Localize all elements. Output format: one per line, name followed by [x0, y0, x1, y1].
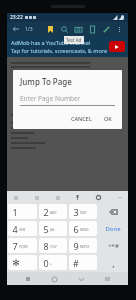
- button[interactable]: More: [115, 193, 124, 202]
- button[interactable]: OK: [101, 114, 115, 123]
- staticText: 23:22: [10, 14, 23, 21]
- staticText: 2: [43, 206, 49, 218]
- button[interactable]: Hide keyboard: [75, 273, 87, 285]
- staticText: TUV: [50, 244, 57, 249]
- button[interactable]: 9: [69, 238, 97, 253]
- button[interactable]: ✻: [8, 255, 37, 270]
- staticText: CANCEL: [71, 115, 92, 122]
- button[interactable]: Camera: [73, 24, 84, 35]
- staticText: 9: [73, 240, 79, 252]
- staticText: 4: [12, 223, 18, 235]
- staticText: Test Ad: [66, 37, 82, 43]
- button[interactable]: Done: [99, 221, 127, 236]
- button[interactable]: Bookmark: [45, 24, 56, 35]
- staticText: Tap for tutorials, screencasts, & more: [11, 47, 107, 54]
- button[interactable]: Voice input: [73, 193, 82, 202]
- staticText: PQRS: [19, 244, 28, 249]
- button[interactable]: 4: [8, 221, 37, 236]
- staticText: 7: [12, 240, 18, 252]
- button[interactable]: Switch keyboard: [101, 273, 113, 285]
- staticText: +: [50, 261, 53, 266]
- button[interactable]: Keyboard tool: [11, 193, 20, 202]
- staticText: Enter Page Number: [20, 94, 81, 103]
- button[interactable]: 5: [39, 221, 67, 236]
- staticText: DEF: [80, 210, 87, 215]
- button[interactable]: Search: [59, 24, 70, 35]
- button[interactable]: 1: [8, 204, 37, 219]
- button[interactable]: +*#: [99, 238, 127, 253]
- button[interactable]: 7: [8, 238, 37, 253]
- button[interactable]: Play video: [109, 41, 125, 52]
- button[interactable]: 8: [39, 238, 67, 253]
- button[interactable]: 6: [69, 221, 97, 236]
- button[interactable]: Keyboard tool: [53, 193, 62, 202]
- staticText: 5: [43, 223, 49, 235]
- button[interactable]: Backspace: [99, 204, 127, 219]
- button[interactable]: ,: [99, 255, 127, 270]
- staticText: Done: [105, 225, 121, 233]
- button[interactable]: More options: [115, 25, 124, 34]
- staticText: #: [73, 257, 79, 269]
- button[interactable]: Settings: [94, 193, 103, 202]
- button[interactable]: Keyboard tool: [32, 193, 41, 202]
- button[interactable]: 0: [39, 255, 67, 270]
- staticText: 8: [43, 240, 49, 252]
- button[interactable]: CANCEL: [68, 114, 95, 123]
- staticText: ✻: [12, 258, 20, 268]
- staticText: +*#: [108, 242, 119, 250]
- button[interactable]: 3: [69, 204, 97, 219]
- staticText: Jump To Page: [20, 76, 72, 87]
- staticText: MNO: [80, 227, 89, 232]
- button[interactable]: Home: [48, 273, 60, 285]
- staticText: JKL: [50, 227, 55, 232]
- button[interactable]: #: [69, 255, 97, 270]
- staticText: 3: [73, 206, 79, 218]
- staticText: 1/3: [25, 26, 33, 33]
- staticText: ABC: [50, 210, 57, 215]
- staticText: GHI: [19, 227, 26, 232]
- staticText: 0: [43, 257, 49, 269]
- button[interactable]: Recent apps: [22, 273, 34, 285]
- staticText: OK: [104, 115, 112, 122]
- button[interactable]: 2: [39, 204, 67, 219]
- staticText: AdMob has a YouTube channel: [11, 39, 91, 46]
- staticText: 1: [12, 206, 18, 218]
- button[interactable]: Back: [11, 24, 21, 34]
- button[interactable]: Bookmarks: [87, 24, 98, 35]
- staticText: 6: [73, 223, 79, 235]
- button[interactable]: Edit: [101, 24, 112, 35]
- staticText: ,: [112, 257, 115, 269]
- staticText: WXYZ: [80, 244, 90, 249]
